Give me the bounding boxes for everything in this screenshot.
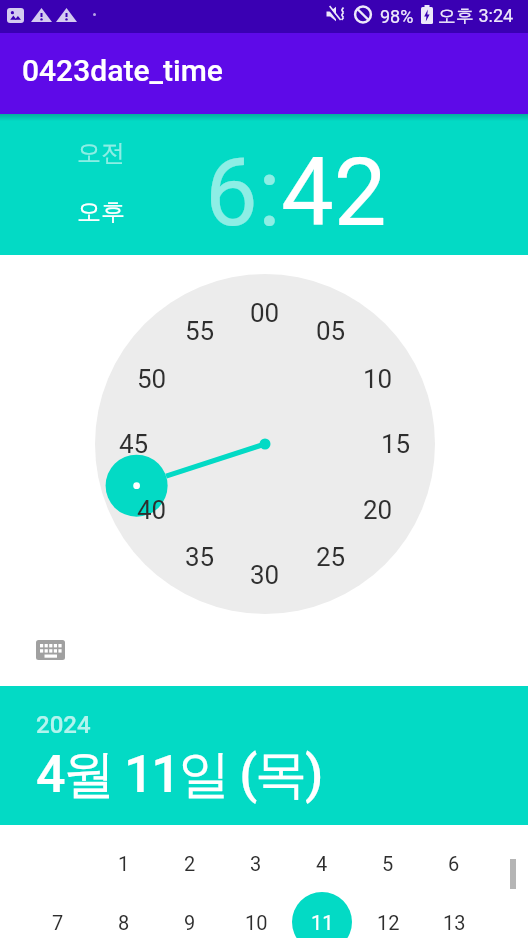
button[interactable]: 8 bbox=[96, 900, 152, 938]
staticText: 10 bbox=[363, 364, 393, 394]
button[interactable]: 35 bbox=[175, 541, 225, 573]
button[interactable]: 50 bbox=[127, 363, 177, 395]
button[interactable]: 2024 bbox=[36, 711, 91, 739]
staticText: 1 bbox=[118, 852, 130, 875]
staticText: 3 bbox=[250, 852, 262, 875]
staticText: 15 bbox=[381, 429, 411, 459]
staticText: 5 bbox=[382, 852, 394, 875]
button[interactable]: 4월 11일 (목) bbox=[36, 742, 322, 808]
button[interactable]: 12 bbox=[360, 900, 416, 938]
staticText: 0423date_time bbox=[22, 53, 223, 88]
button[interactable]: 05 bbox=[306, 315, 356, 347]
staticText: 25 bbox=[316, 542, 346, 572]
staticText: 35 bbox=[185, 542, 215, 572]
staticText: 30 bbox=[250, 560, 280, 590]
button[interactable]: 7 bbox=[30, 900, 86, 938]
button[interactable]: 1 bbox=[96, 841, 152, 885]
button[interactable]: 10 bbox=[228, 900, 284, 938]
staticText: 8 bbox=[118, 911, 130, 934]
staticText: 55 bbox=[185, 316, 215, 346]
staticText: 7 bbox=[52, 911, 64, 934]
staticText: : bbox=[258, 138, 281, 248]
staticText: 11 bbox=[311, 911, 334, 934]
staticText: 40 bbox=[137, 495, 167, 525]
button[interactable]: 42 bbox=[281, 138, 387, 248]
staticText: 05 bbox=[316, 316, 346, 346]
staticText: 98% bbox=[380, 6, 414, 27]
button[interactable]: 30 bbox=[240, 559, 290, 591]
staticText: 45 bbox=[119, 429, 149, 459]
button[interactable]: 오전 bbox=[66, 136, 136, 170]
staticText: 9 bbox=[184, 911, 196, 934]
staticText: 10 bbox=[245, 911, 268, 934]
staticText: 4 bbox=[316, 852, 328, 875]
staticText: 6 bbox=[448, 852, 460, 875]
button[interactable]: 20 bbox=[353, 494, 403, 526]
staticText: 오후 bbox=[77, 197, 125, 227]
staticText: 50 bbox=[137, 364, 167, 394]
button[interactable]: 45 bbox=[109, 428, 159, 460]
staticText: 00 bbox=[250, 298, 280, 328]
staticText: 2 bbox=[184, 852, 196, 875]
staticText: 오전 bbox=[77, 138, 125, 168]
button[interactable]: 13 bbox=[426, 900, 482, 938]
button[interactable]: 25 bbox=[306, 541, 356, 573]
button[interactable]: 오후 bbox=[66, 195, 136, 229]
button[interactable]: 00 bbox=[240, 297, 290, 329]
button[interactable]: 55 bbox=[175, 315, 225, 347]
staticText: 20 bbox=[363, 495, 393, 525]
button[interactable]: 10 bbox=[353, 363, 403, 395]
staticText: 12 bbox=[377, 911, 400, 934]
button[interactable]: 4 bbox=[294, 841, 350, 885]
button[interactable]: 2 bbox=[162, 841, 218, 885]
button[interactable]: 15 bbox=[371, 428, 421, 460]
button[interactable] bbox=[30, 634, 71, 666]
button[interactable]: 6 bbox=[426, 841, 482, 885]
staticText: 13 bbox=[443, 911, 466, 934]
button[interactable]: 9 bbox=[162, 900, 218, 938]
button[interactable]: 3 bbox=[228, 841, 284, 885]
button[interactable]: 11 bbox=[294, 900, 350, 938]
button[interactable]: 40 bbox=[127, 494, 177, 526]
button[interactable]: 6 bbox=[205, 138, 258, 248]
staticText: 오후 3:24 bbox=[438, 5, 514, 28]
button[interactable]: 0423date_time bbox=[0, 33, 528, 114]
button[interactable]: 5 bbox=[360, 841, 416, 885]
